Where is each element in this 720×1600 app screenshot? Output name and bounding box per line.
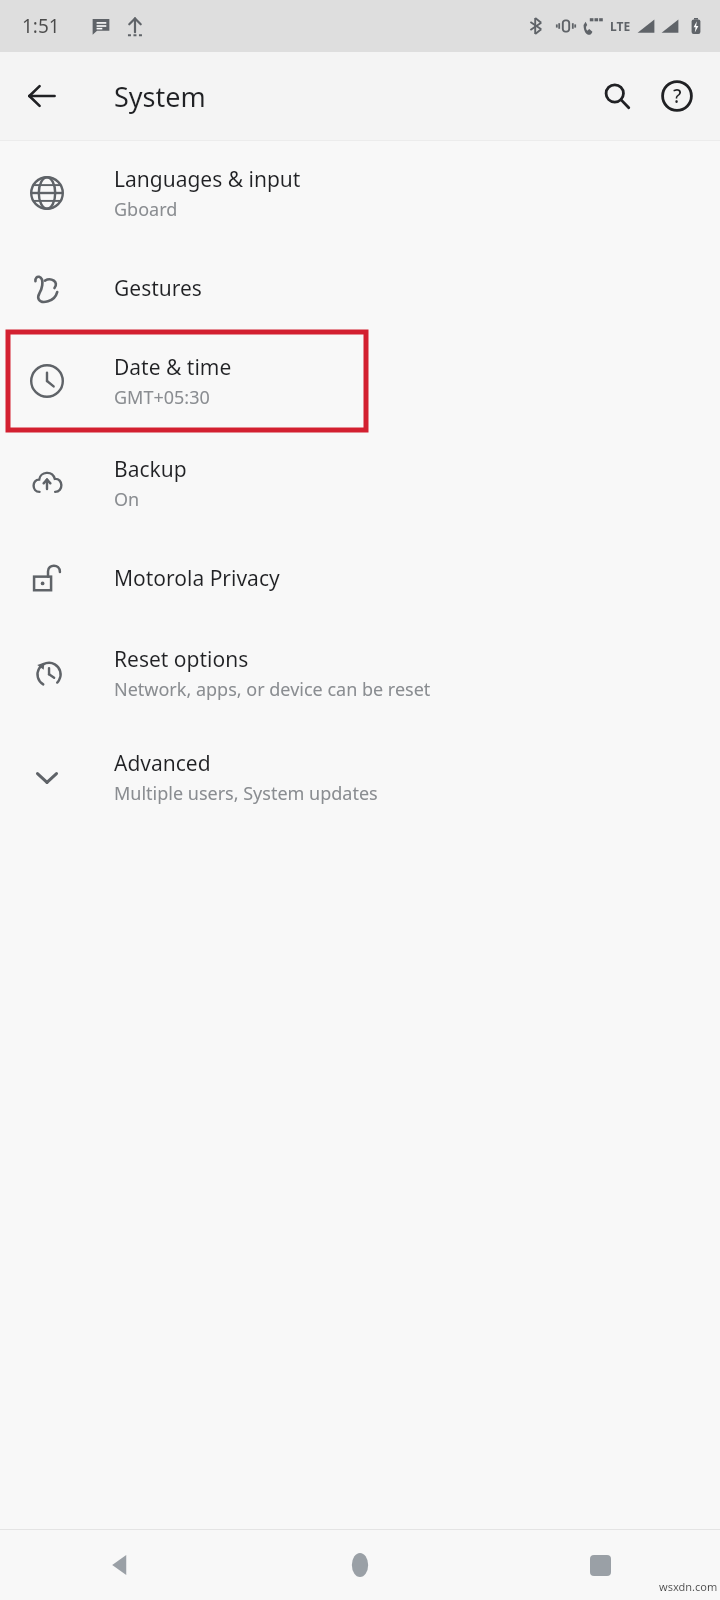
staticText: Network, apps, or device can be reset	[114, 677, 431, 702]
button[interactable]: Gestures	[0, 245, 720, 331]
staticText: Gestures	[114, 274, 202, 303]
button[interactable]: Help	[648, 67, 706, 125]
staticText: ?	[673, 83, 682, 109]
staticText: LTE	[610, 18, 631, 34]
staticText: wsxdn.com	[659, 1579, 718, 1594]
button[interactable]: Back	[0, 1530, 240, 1600]
button[interactable]: Languages & input	[0, 141, 720, 245]
button[interactable]: Home	[240, 1530, 480, 1600]
button[interactable]: Recents	[480, 1530, 720, 1600]
button[interactable]: Search	[588, 67, 646, 125]
staticText: Date & time	[114, 353, 232, 382]
button[interactable]: Reset options	[0, 621, 720, 725]
staticText: Advanced	[114, 749, 211, 778]
staticText: Gboard	[114, 197, 178, 222]
staticText: 1:51	[22, 13, 60, 39]
staticText: System	[114, 78, 206, 115]
staticText: On	[114, 487, 140, 512]
staticText: Backup	[114, 455, 187, 484]
button[interactable]: Advanced	[0, 725, 720, 829]
staticText: Languages & input	[114, 165, 301, 194]
staticText: Motorola Privacy	[114, 564, 280, 593]
button[interactable]: Motorola Privacy	[0, 535, 720, 621]
button[interactable]: Backup	[0, 431, 720, 535]
staticText: Reset options	[114, 645, 249, 674]
button[interactable]: Date & time	[0, 331, 720, 431]
button[interactable]: Back	[10, 64, 74, 128]
staticText: Multiple users, System updates	[114, 781, 378, 806]
staticText: GMT+05:30	[114, 385, 210, 410]
